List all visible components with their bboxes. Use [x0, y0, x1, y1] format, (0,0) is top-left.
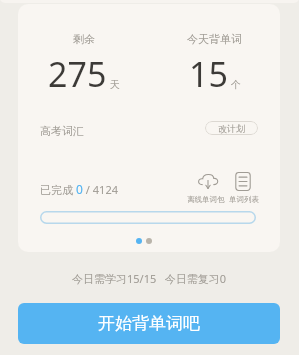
staticText: 今天背单词 — [187, 32, 242, 46]
other: 单词列表 — [234, 172, 252, 191]
button[interactable]: 单词列表 — [226, 172, 264, 208]
staticText: 开始背单词吧 — [98, 313, 200, 334]
staticText: 个 — [231, 78, 241, 91]
staticText: / 4124 — [83, 182, 118, 197]
staticText: 剩余 — [73, 32, 95, 46]
button[interactable]: 离线单词包 — [182, 172, 226, 208]
button[interactable]: 开始背单词吧 — [18, 303, 280, 344]
other: 离线单词包 — [196, 172, 220, 189]
staticText: 275 — [48, 51, 107, 97]
staticText: 已完成 — [40, 182, 76, 197]
staticText: 15 — [189, 51, 228, 97]
staticText: 今日需学习15/15 今日需复习0 — [72, 271, 227, 286]
staticText: 高考词汇 — [40, 124, 84, 138]
staticText: 改计划 — [218, 123, 245, 134]
button[interactable]: 改计划 — [205, 121, 258, 135]
staticText: 0 — [76, 181, 83, 197]
staticText: 天 — [110, 78, 120, 91]
staticText: 离线单词包 — [187, 195, 225, 204]
staticText: 单词列表 — [229, 195, 259, 204]
